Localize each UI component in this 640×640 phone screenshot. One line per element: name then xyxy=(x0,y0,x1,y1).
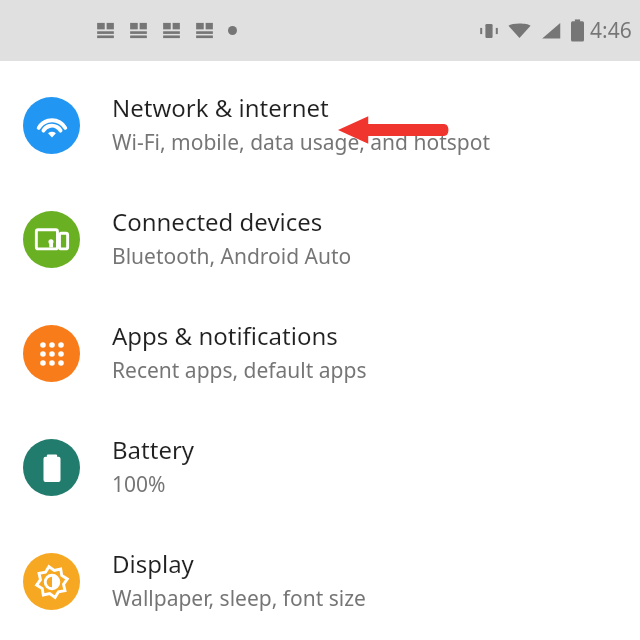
staticText: Bluetooth, Android Auto xyxy=(112,242,352,271)
staticText: 100% xyxy=(112,470,166,499)
staticText: Network & internet xyxy=(112,91,329,124)
button[interactable]: Display xyxy=(0,549,640,640)
staticText: 4:46 xyxy=(590,16,632,45)
staticText: Connected devices xyxy=(112,205,323,238)
button[interactable]: Network & internet xyxy=(0,93,640,207)
staticText: Wi-Fi, mobile, data usage, and hotspot xyxy=(112,128,490,157)
staticText: Display xyxy=(112,547,194,580)
staticText: Battery xyxy=(112,433,195,466)
staticText: Wallpaper, sleep, font size xyxy=(112,584,366,613)
button[interactable]: Battery xyxy=(0,435,640,549)
button[interactable]: Connected devices xyxy=(0,207,640,321)
staticText: Apps & notifications xyxy=(112,319,338,352)
staticText: Recent apps, default apps xyxy=(112,356,367,385)
button[interactable]: Apps & notifications xyxy=(0,321,640,435)
